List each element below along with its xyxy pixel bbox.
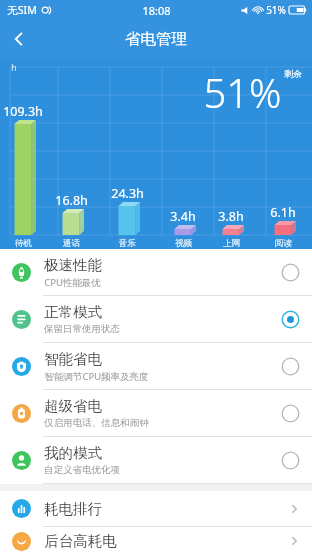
- staticText: 智能调节CPU频率及亮度: [44, 370, 149, 383]
- staticText: 我的模式: [44, 444, 102, 462]
- staticText: 视频: [175, 238, 192, 249]
- staticText: 保留日常使用状态: [44, 323, 120, 335]
- staticText: 超级省电: [44, 397, 102, 415]
- staticText: h: [11, 62, 17, 74]
- button[interactable]: 智能省电: [0, 343, 312, 390]
- staticText: 3.8h: [218, 208, 244, 225]
- staticText: CPU性能最优: [44, 276, 101, 289]
- staticText: 正常模式: [44, 303, 102, 321]
- staticText: 智能省电: [44, 350, 102, 368]
- button[interactable]: 我的模式: [0, 437, 312, 484]
- staticText: 待机: [15, 238, 32, 249]
- staticText: 18:08: [142, 3, 171, 18]
- button[interactable]: 耗电排行: [0, 491, 312, 527]
- staticText: 仅启用电话、信息和闹钟: [44, 417, 149, 429]
- staticText: 阅读: [275, 238, 292, 249]
- button[interactable]: Back: [0, 20, 37, 57]
- button[interactable]: 极速性能: [0, 249, 312, 296]
- staticText: 省电管理: [125, 29, 187, 49]
- staticText: 耗电排行: [44, 500, 102, 518]
- button[interactable]: 后台高耗电: [0, 527, 312, 555]
- staticText: 剩余: [284, 68, 302, 79]
- staticText: 音乐: [119, 238, 136, 249]
- button[interactable]: 超级省电: [0, 390, 312, 437]
- staticText: 109.3h: [3, 103, 43, 120]
- staticText: 上网: [223, 238, 240, 249]
- staticText: 无SIM: [7, 3, 37, 17]
- staticText: 51%: [266, 3, 286, 17]
- staticText: 通话: [63, 238, 80, 249]
- button[interactable]: 正常模式: [0, 296, 312, 343]
- staticText: 6.1h: [270, 204, 296, 221]
- staticText: 极速性能: [44, 256, 102, 274]
- staticText: 51%: [203, 65, 282, 119]
- staticText: 后台高耗电: [44, 532, 117, 550]
- staticText: 3.4h: [170, 208, 196, 225]
- staticText: 自定义省电优化项: [44, 464, 120, 476]
- staticText: 16.8h: [55, 192, 88, 209]
- staticText: 24.3h: [111, 185, 144, 202]
